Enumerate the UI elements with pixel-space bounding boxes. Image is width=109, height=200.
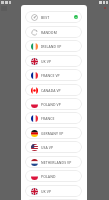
button[interactable]: POLAND: [25, 170, 82, 182]
staticText: POLAND VP: [41, 102, 61, 107]
staticText: BEST: [41, 15, 50, 20]
staticText: GERMANY VP: [41, 131, 64, 136]
staticText: FRANCE VP: [41, 73, 60, 78]
staticText: UK VP: [41, 59, 52, 64]
staticText: CANADA VP: [41, 88, 61, 93]
button[interactable]: FRANCE: [25, 112, 82, 124]
staticText: FRANCE: [41, 116, 55, 121]
staticText: IRELAND VP: [41, 44, 62, 49]
button[interactable]: POLAND VP: [25, 98, 82, 110]
button[interactable]: UK VP: [25, 185, 82, 197]
staticText: RANDOM: [41, 30, 57, 35]
other: Selected: [74, 15, 78, 19]
button[interactable]: CANADA VP: [25, 84, 82, 96]
staticText: NETHERLANDS VP: [41, 160, 72, 165]
button[interactable]: NETHERLANDS VP: [25, 156, 82, 168]
button[interactable]: RANDOM: [25, 26, 82, 38]
button[interactable]: FRANCE VP: [25, 69, 82, 81]
button[interactable]: GERMANY VP: [25, 127, 82, 139]
staticText: UK VP: [41, 189, 52, 194]
button[interactable]: UK VP: [25, 55, 82, 67]
button[interactable]: USA VP: [25, 141, 82, 153]
button[interactable]: IRELAND VP: [25, 40, 82, 52]
staticText: USA VP: [41, 145, 54, 150]
button[interactable]: FRANCE VP: [25, 199, 82, 200]
button[interactable]: BEST: [25, 11, 82, 23]
staticText: POLAND: [41, 174, 56, 179]
